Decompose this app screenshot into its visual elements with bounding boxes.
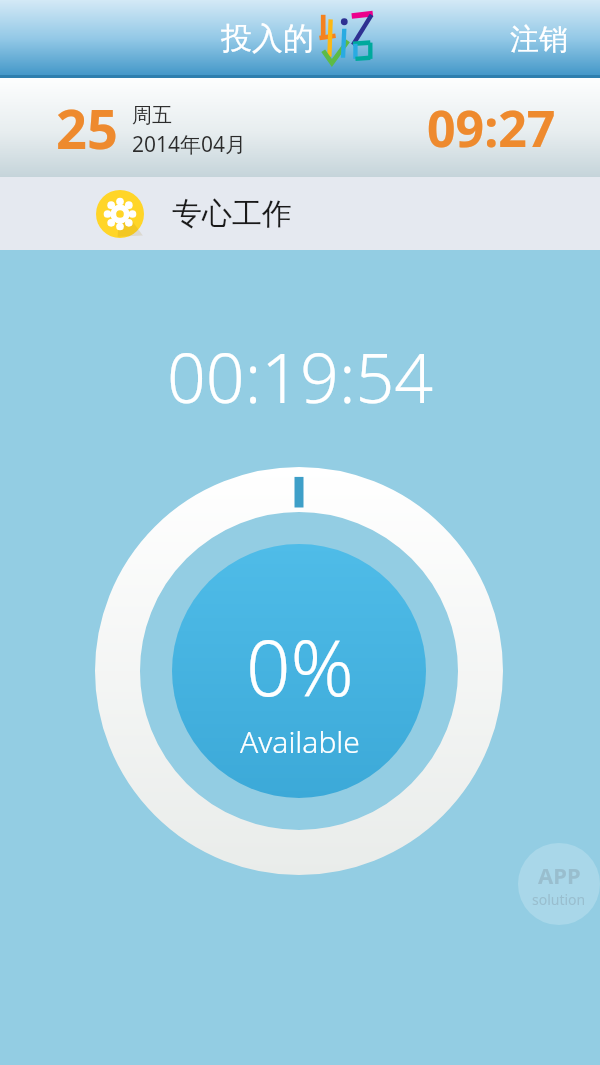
staticText: 2014年04月	[132, 130, 247, 159]
staticText: 注销	[510, 21, 568, 58]
button[interactable]: Focus progress 0 percent available	[95, 467, 503, 875]
staticText: APP	[538, 860, 581, 890]
staticText: 周五	[132, 103, 172, 128]
staticText: Available	[240, 721, 360, 762]
button[interactable]: 注销	[504, 13, 574, 66]
staticText: 投入的	[221, 19, 314, 58]
staticText: 0%	[246, 613, 354, 719]
staticText: 专心工作	[172, 195, 292, 233]
staticText: 09:27	[427, 94, 556, 162]
button[interactable]: 专心工作	[0, 177, 600, 250]
staticText: 25	[56, 91, 118, 165]
staticText: 00:19:54	[167, 330, 434, 423]
staticText: solution	[532, 890, 586, 909]
